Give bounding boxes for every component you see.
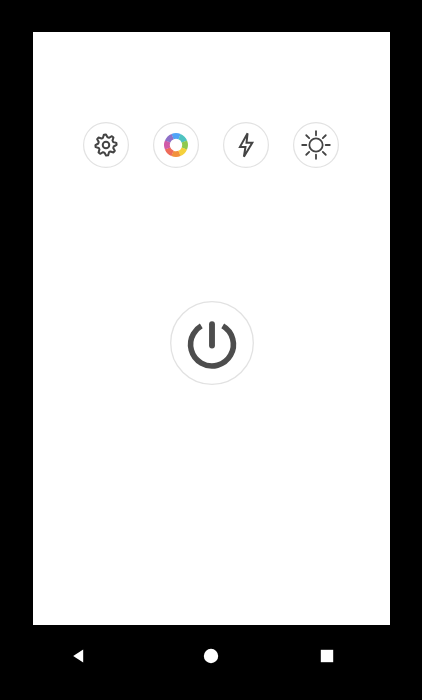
button[interactable]: Brightness [293,122,339,168]
button[interactable]: Home [160,633,261,679]
button[interactable]: Power [170,301,254,385]
button[interactable]: Flash [223,122,269,168]
button[interactable]: Settings [83,122,129,168]
button[interactable]: Back [0,633,160,679]
button[interactable]: Recent apps [261,633,392,679]
button[interactable]: Color [153,122,199,168]
